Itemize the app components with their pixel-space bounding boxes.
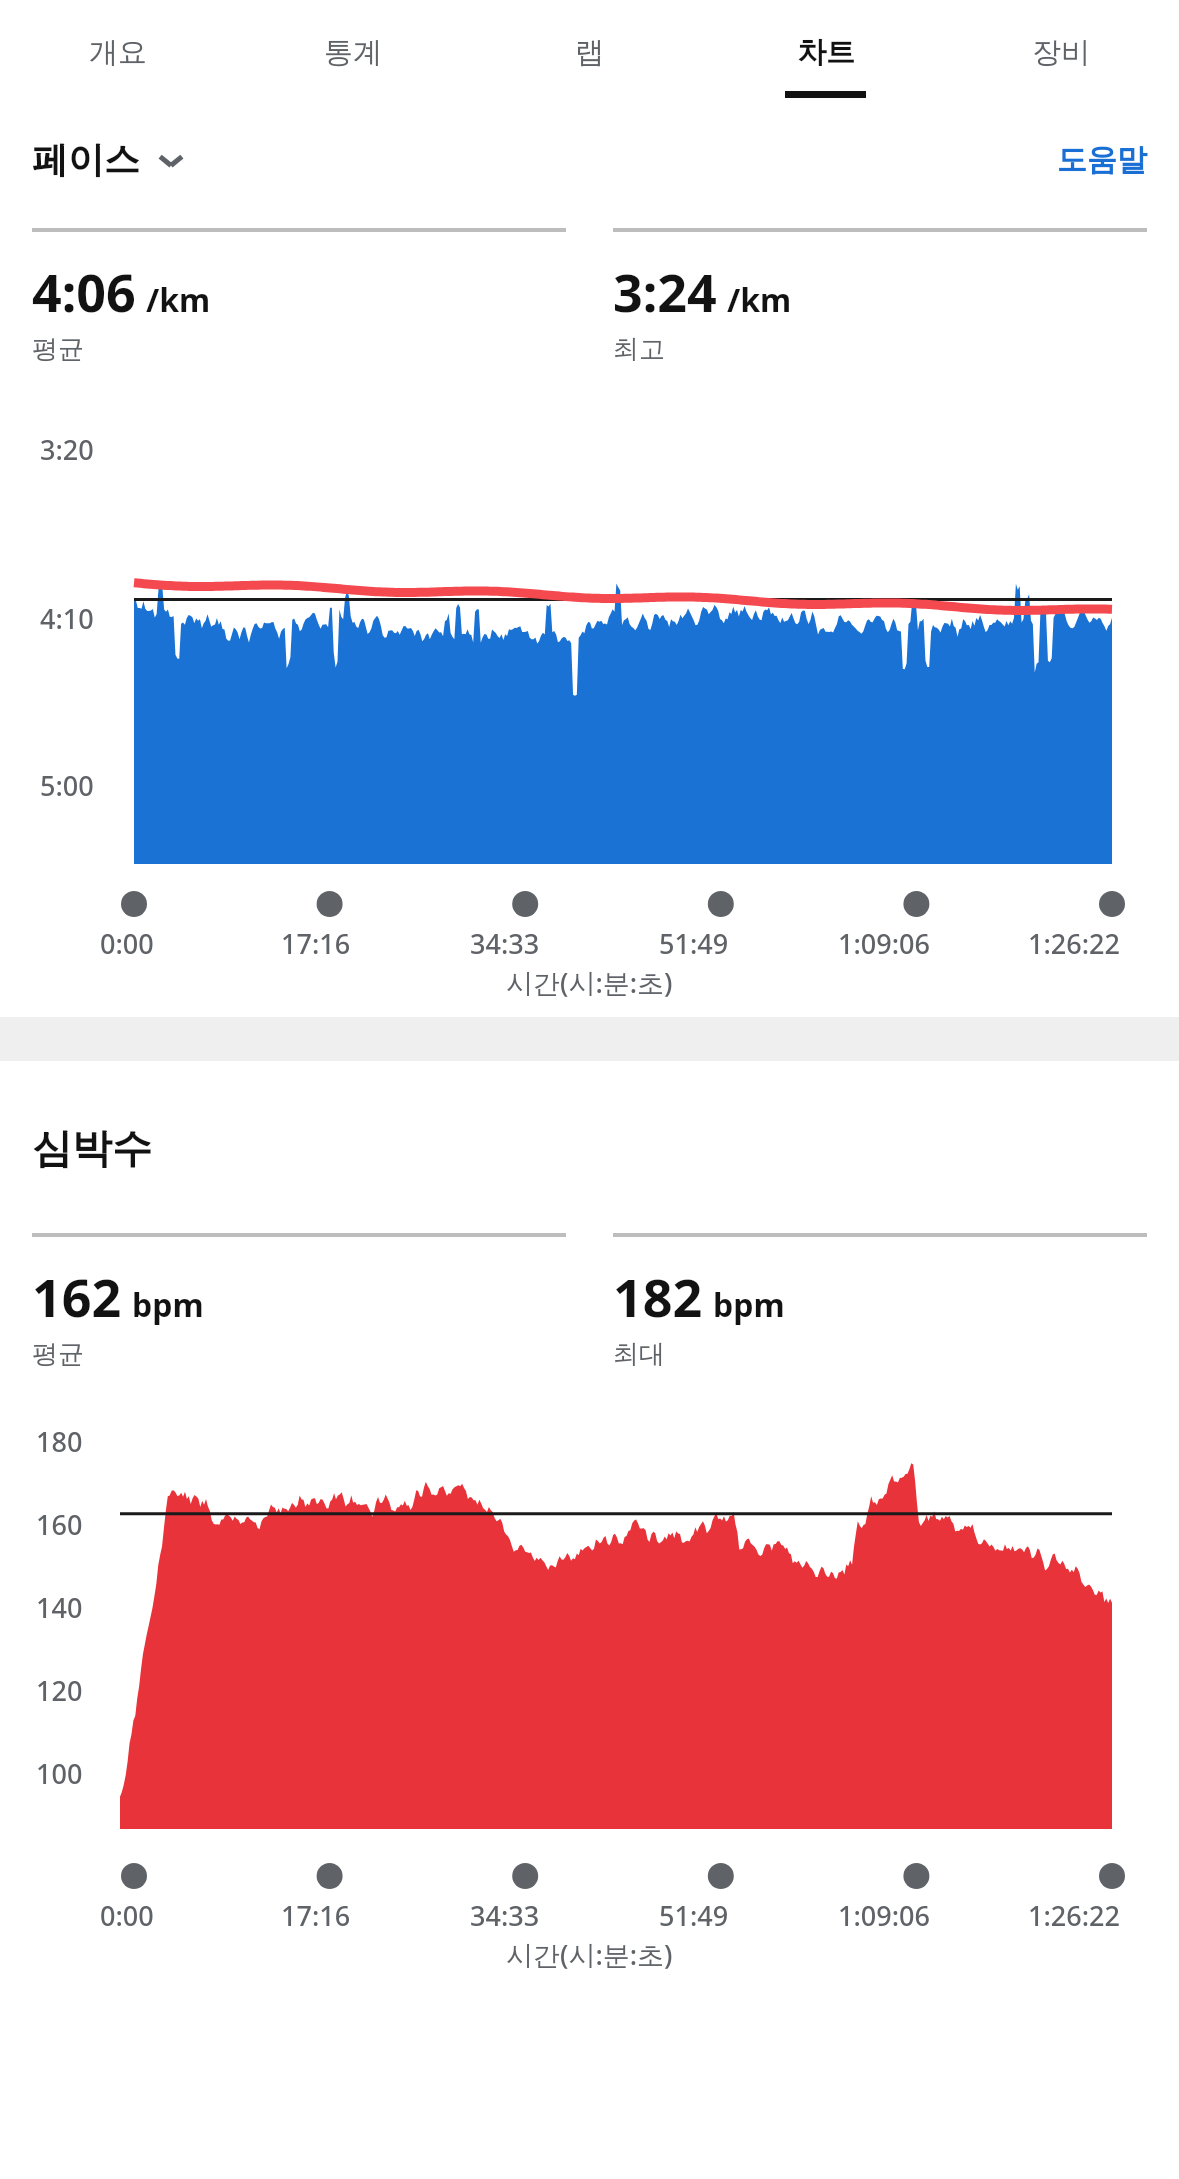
staticText: 통계 [324,34,382,71]
staticText: 평균 [32,333,84,366]
staticText: /km [727,278,792,322]
staticText: /km [146,278,211,322]
button[interactable]: 개요 [0,0,235,117]
staticText: 1:26:22 [1028,1897,1120,1934]
staticText: 0:00 [100,925,154,962]
staticText: 140 [36,1589,83,1626]
staticText: 34:33 [470,1897,540,1934]
button[interactable]: 랩 [471,0,707,117]
button[interactable]: 도움말 [1057,141,1147,179]
button[interactable]: 162 [32,1233,566,1371]
staticText: 도움말 [1057,141,1147,179]
button[interactable]: 페이스 [32,137,188,182]
staticText: 3:24 [613,256,717,327]
staticText: 1:09:06 [838,925,930,962]
staticText: 개요 [89,34,147,71]
staticText: 장비 [1032,34,1090,71]
staticText: 시간(시:분:초) [506,1936,673,1973]
staticText: 5:00 [40,767,94,804]
staticText: 51:49 [659,1897,729,1934]
staticText: 차트 [797,34,855,71]
button[interactable]: 3:24 [613,228,1147,366]
staticText: 1:26:22 [1028,925,1120,962]
staticText: 17:16 [281,1897,351,1934]
button[interactable]: 통계 [235,0,471,117]
staticText: 17:16 [281,925,351,962]
staticText: 랩 [575,34,604,71]
staticText: 100 [36,1755,83,1792]
staticText: 최고 [613,333,665,366]
staticText: 4:10 [40,600,94,637]
staticText: 페이스 [32,137,140,182]
button[interactable]: 장비 [943,0,1179,117]
button[interactable]: 4:06 [32,228,566,366]
staticText: 시간(시:분:초) [506,964,673,1001]
staticText: 160 [36,1506,83,1543]
staticText: 평균 [32,1338,84,1371]
staticText: 최대 [613,1338,665,1371]
staticText: 180 [36,1423,83,1460]
staticText: bpm [713,1283,785,1327]
staticText: 162 [32,1261,122,1332]
staticText: 120 [36,1672,83,1709]
staticText: 4:06 [32,256,136,327]
button[interactable]: 182 [613,1233,1147,1371]
staticText: 1:09:06 [838,1897,930,1934]
staticText: 0:00 [100,1897,154,1934]
staticText: bpm [132,1283,204,1327]
button[interactable]: 차트 [707,0,943,117]
staticText: 3:20 [40,431,94,468]
other: 펼치기 [154,143,188,177]
staticText: 심박수 [32,1123,152,1173]
staticText: 182 [613,1261,703,1332]
staticText: 51:49 [659,925,729,962]
staticText: 34:33 [470,925,540,962]
